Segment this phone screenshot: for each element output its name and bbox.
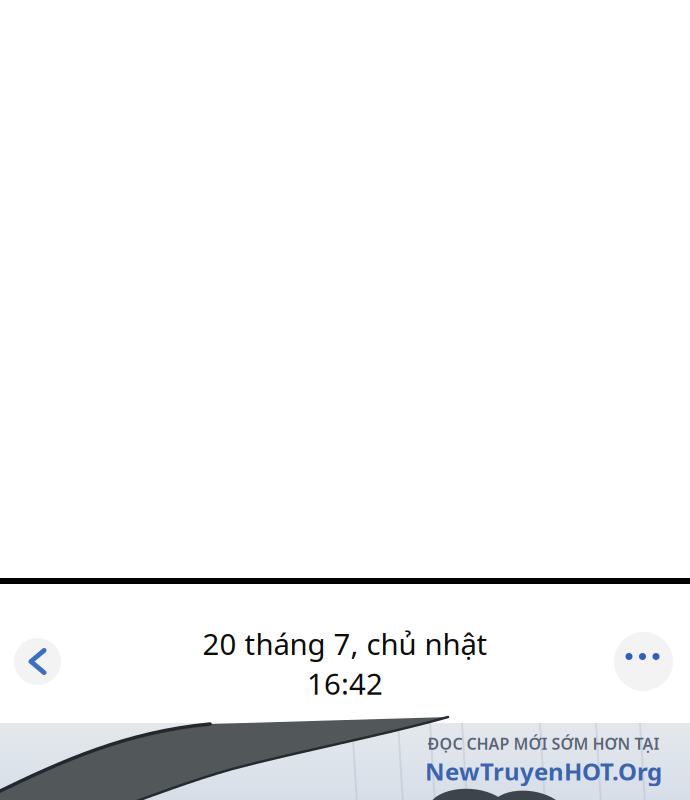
staticText: ĐỌC CHAP MỚI SỚM HƠN TẠI xyxy=(427,733,659,754)
button[interactable]: Back xyxy=(14,638,61,685)
staticText: 20 tháng 7, chủ nhật xyxy=(202,624,487,663)
staticText: 16:42 xyxy=(307,664,383,703)
button[interactable]: More options xyxy=(614,632,673,691)
staticText: NewTruyenHOT.Org xyxy=(425,755,662,787)
